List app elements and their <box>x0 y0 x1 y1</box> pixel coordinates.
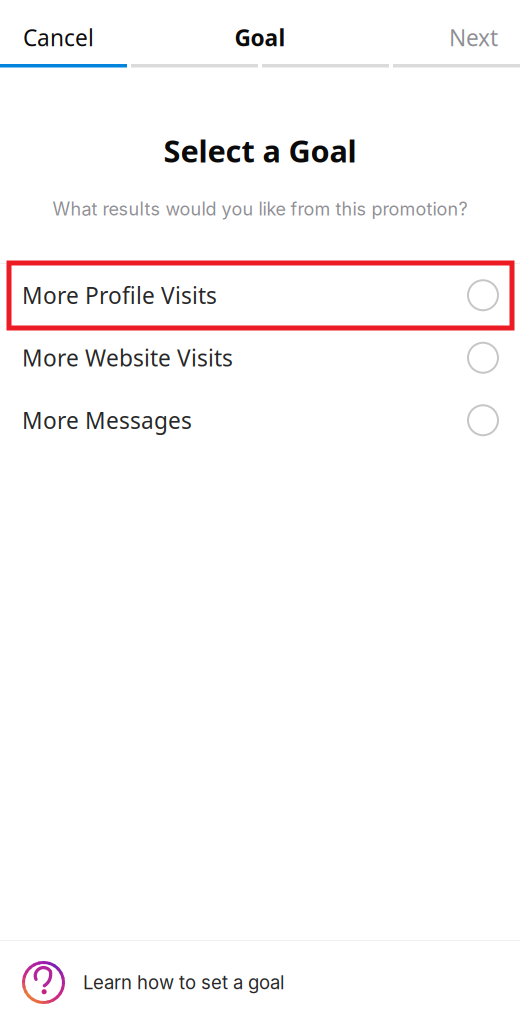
button[interactable]: Learn how to set a goal <box>0 941 520 1024</box>
button[interactable]: Next <box>347 0 520 64</box>
button[interactable]: More Website Visits <box>0 326 520 389</box>
button[interactable]: Cancel <box>0 0 173 64</box>
staticText: Learn how to set a goal <box>83 971 284 994</box>
staticText: Next <box>449 22 498 52</box>
button[interactable]: More Messages <box>0 389 520 451</box>
staticText: Goal <box>234 22 285 52</box>
button[interactable]: More Profile Visits <box>0 264 520 326</box>
staticText: More Messages <box>22 405 192 435</box>
staticText: Select a Goal <box>163 130 356 171</box>
staticText: Cancel <box>23 22 94 52</box>
staticText: More Profile Visits <box>22 280 217 310</box>
staticText: What results would you like from this pr… <box>52 198 467 220</box>
staticText: More Website Visits <box>22 343 233 373</box>
